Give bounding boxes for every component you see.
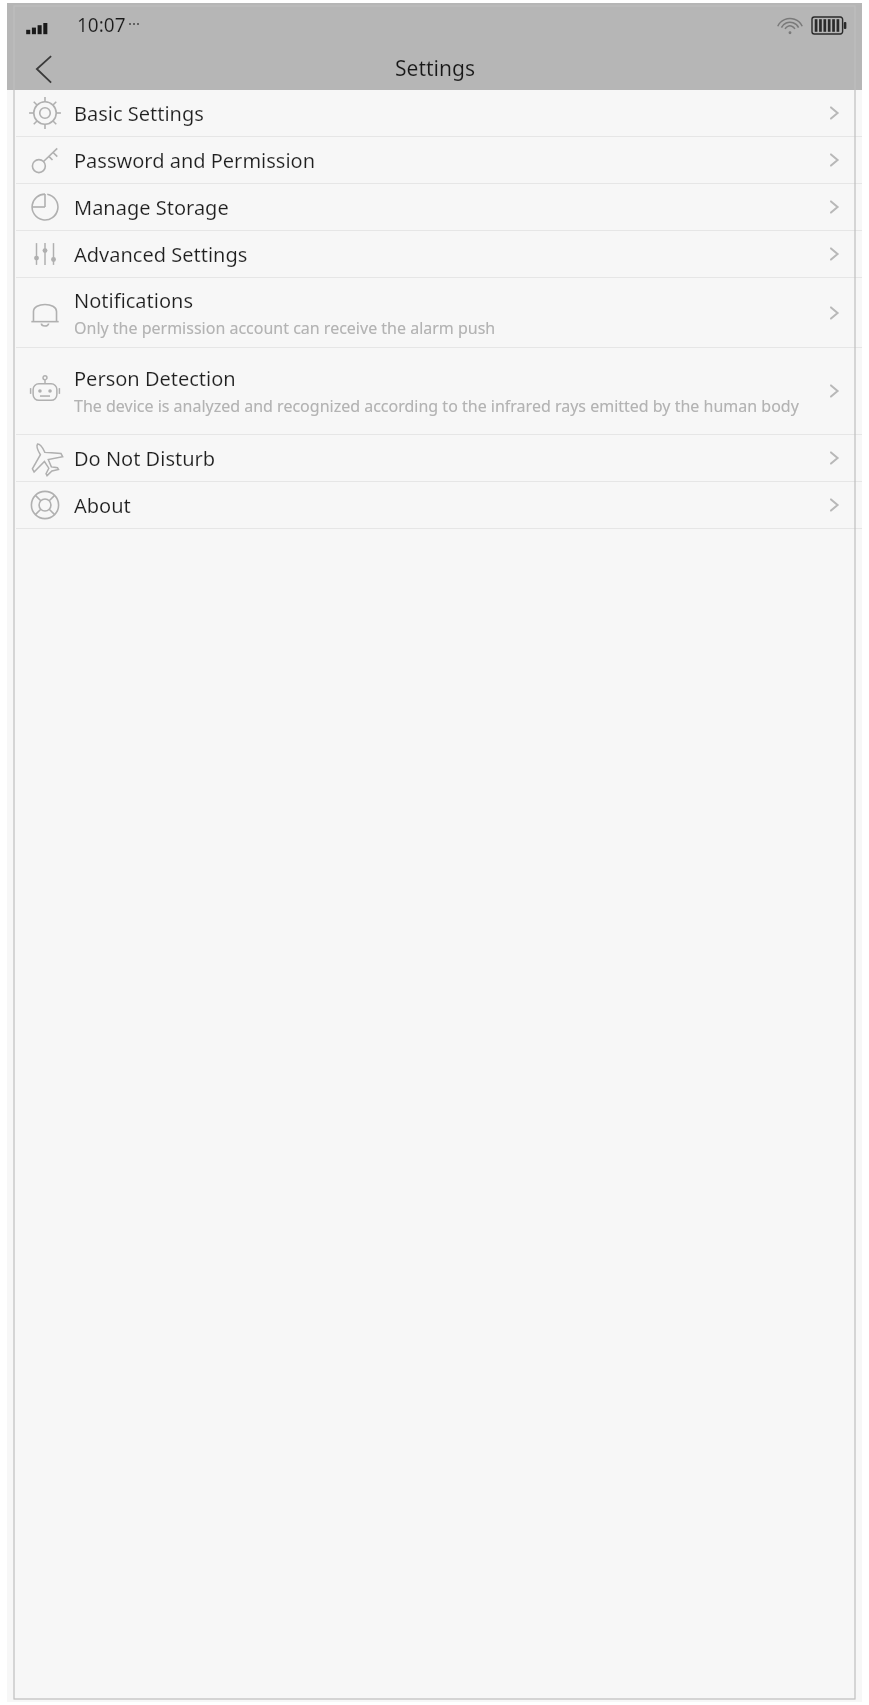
staticText: 10:07 [77, 12, 126, 38]
staticText: Password and Permission [74, 147, 316, 174]
button[interactable]: About [7, 482, 862, 528]
button[interactable]: Advanced Settings [7, 231, 862, 277]
staticText: Do Not Disturb [74, 445, 216, 472]
staticText: About [74, 492, 131, 519]
staticText: Notifications [74, 287, 193, 314]
staticText: ··· [128, 13, 141, 33]
staticText: The device is analyzed and recognized ac… [74, 395, 799, 417]
button[interactable]: Basic Settings [7, 90, 862, 136]
staticText: Advanced Settings [74, 241, 248, 268]
staticText: Only the permission account can receive … [74, 317, 496, 339]
button[interactable]: Notifications [7, 278, 862, 347]
button[interactable]: Manage Storage [7, 184, 862, 230]
staticText: Manage Storage [74, 194, 229, 221]
button[interactable]: Password and Permission [7, 137, 862, 183]
staticText: Person Detection [74, 365, 236, 392]
staticText: Settings [395, 54, 475, 83]
button[interactable]: Person Detection [7, 348, 862, 434]
staticText: Basic Settings [74, 100, 204, 127]
button[interactable]: Back [21, 47, 69, 90]
button[interactable]: Do Not Disturb [7, 435, 862, 481]
